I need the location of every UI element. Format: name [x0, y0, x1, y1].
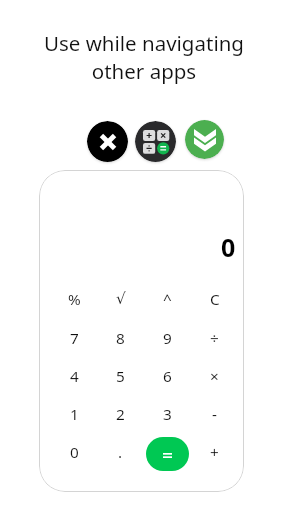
button[interactable]: Close: [87, 121, 128, 162]
button[interactable]: 0: [51, 437, 98, 467]
button[interactable]: √: [97, 284, 144, 314]
button[interactable]: Equals: [146, 437, 189, 471]
staticText: 1: [70, 404, 79, 425]
button[interactable]: 5: [97, 361, 144, 391]
staticText: 0: [70, 442, 79, 463]
staticText: ×: [210, 366, 219, 387]
staticText: √: [116, 290, 126, 308]
button[interactable]: ×: [191, 361, 238, 391]
staticText: .: [118, 442, 123, 463]
button[interactable]: -: [191, 399, 238, 429]
button[interactable]: Calculator: [135, 121, 176, 162]
staticText: C: [210, 289, 220, 310]
button[interactable]: 8: [97, 323, 144, 353]
staticText: Use while navigating other apps: [44, 29, 244, 85]
button[interactable]: 2: [97, 399, 144, 429]
staticText: 6: [163, 366, 172, 387]
button[interactable]: [144, 437, 191, 467]
button[interactable]: 3: [144, 399, 191, 429]
staticText: 4: [70, 366, 79, 387]
staticText: 0: [221, 230, 236, 258]
button[interactable]: 9: [144, 323, 191, 353]
button[interactable]: +: [191, 437, 238, 467]
staticText: ÷: [210, 328, 219, 349]
staticText: 7: [70, 328, 79, 349]
staticText: 2: [116, 404, 125, 425]
button[interactable]: Collapse: [185, 120, 224, 159]
staticText: 8: [116, 328, 125, 349]
staticText: -: [212, 404, 217, 425]
button[interactable]: 7: [51, 323, 98, 353]
staticText: 9: [163, 328, 172, 349]
button[interactable]: C: [191, 284, 238, 314]
staticText: 3: [163, 404, 172, 425]
button[interactable]: 4: [51, 361, 98, 391]
staticText: +: [210, 442, 219, 463]
button[interactable]: ^: [144, 284, 191, 314]
staticText: ^: [163, 289, 172, 310]
button[interactable]: 1: [51, 399, 98, 429]
button[interactable]: 6: [144, 361, 191, 391]
button[interactable]: .: [97, 437, 144, 467]
button[interactable]: ÷: [191, 323, 238, 353]
staticText: 5: [116, 366, 125, 387]
button[interactable]: %: [51, 284, 98, 314]
staticText: %: [68, 289, 81, 310]
